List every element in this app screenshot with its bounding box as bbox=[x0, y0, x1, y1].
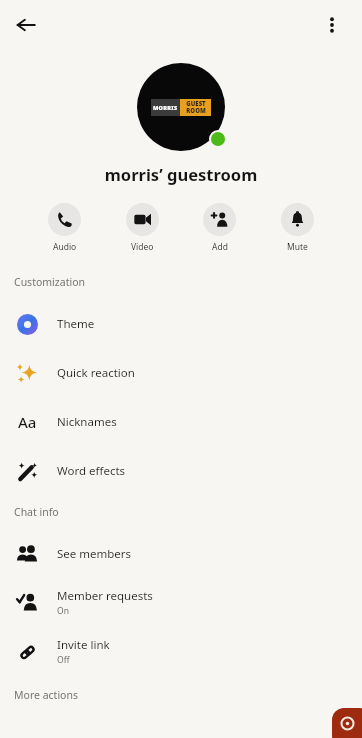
staticText: Video bbox=[131, 241, 154, 253]
staticText: Nicknames bbox=[57, 414, 117, 430]
button[interactable]: See members bbox=[0, 529, 362, 578]
staticText: Customization bbox=[14, 275, 362, 289]
staticText: Invite link bbox=[57, 637, 110, 653]
staticText: See members bbox=[57, 546, 132, 562]
button[interactable]: Theme bbox=[0, 299, 362, 348]
staticText: More actions bbox=[14, 688, 362, 702]
button[interactable]: Word effects bbox=[0, 446, 362, 495]
button[interactable]: Member requests bbox=[0, 578, 362, 627]
button[interactable]: Video bbox=[124, 203, 161, 253]
staticText: Member requests bbox=[57, 588, 153, 604]
button[interactable]: Add bbox=[201, 203, 238, 253]
staticText: morris’ guestroom bbox=[0, 163, 362, 185]
button[interactable]: Group photo bbox=[137, 63, 225, 151]
staticText: Word effects bbox=[57, 463, 126, 479]
staticText: Chat info bbox=[14, 505, 362, 519]
button[interactable]: Quick reaction bbox=[0, 348, 362, 397]
staticText: Mute bbox=[287, 241, 308, 253]
staticText: Aa bbox=[18, 412, 37, 432]
staticText: Quick reaction bbox=[57, 365, 135, 381]
staticText: Add bbox=[212, 241, 228, 253]
button[interactable]: Audio bbox=[46, 203, 83, 253]
button[interactable]: Mute bbox=[279, 203, 316, 253]
button[interactable]: Camera bbox=[332, 708, 362, 738]
staticText: GUEST ROOM bbox=[186, 100, 206, 115]
staticText: Audio bbox=[53, 241, 77, 253]
button[interactable]: Invite link bbox=[0, 627, 362, 676]
staticText: On bbox=[57, 605, 69, 617]
button[interactable]: More options bbox=[316, 9, 348, 41]
button[interactable]: Back bbox=[8, 7, 44, 43]
button[interactable]: Aa bbox=[0, 397, 362, 446]
staticText: MORRIS bbox=[153, 104, 178, 111]
staticText: Theme bbox=[57, 316, 95, 332]
staticText: Off bbox=[57, 654, 70, 666]
